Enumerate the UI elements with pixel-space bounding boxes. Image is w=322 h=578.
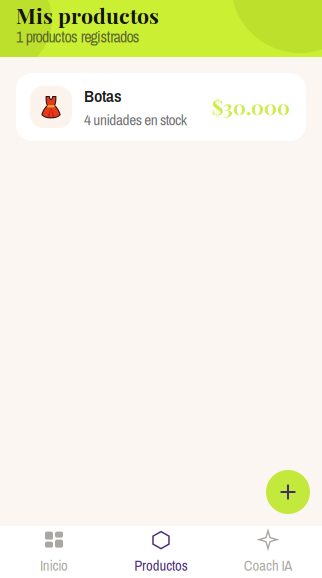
- staticText: Coach IA: [244, 556, 292, 575]
- staticText: Mis productos: [16, 1, 159, 29]
- button[interactable]: Add product: [266, 470, 310, 514]
- staticText: Productos: [134, 556, 188, 575]
- staticText: $30.000: [212, 94, 290, 120]
- staticText: Botas: [84, 84, 122, 107]
- button[interactable]: Coach IA: [214, 526, 321, 578]
- staticText: Inicio: [40, 556, 68, 575]
- button[interactable]: Botas: [16, 73, 306, 141]
- button[interactable]: Inicio: [0, 526, 107, 578]
- staticText: 4 unidades en stock: [84, 109, 187, 130]
- button[interactable]: Productos: [107, 526, 214, 578]
- staticText: 1 productos registrados: [16, 26, 140, 48]
